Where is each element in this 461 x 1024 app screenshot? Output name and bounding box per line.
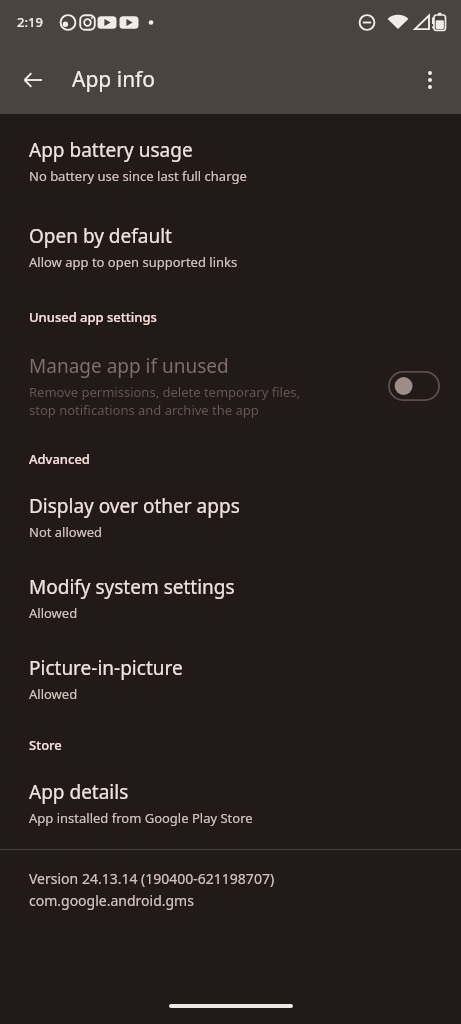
staticText: com.google.android.gms [29,891,194,910]
button[interactable]: Picture-in-picture [0,655,461,703]
staticText: App installed from Google Play Store [29,809,253,827]
staticText: App details [29,779,129,805]
staticText: App battery usage [29,137,193,163]
staticText: Advanced [29,450,90,468]
staticText: Allowed [29,685,78,703]
staticText: Manage app if unused [29,353,229,379]
button[interactable]: Display over other apps [0,493,461,541]
staticText: Not allowed [29,523,102,541]
staticText: Store [29,736,62,754]
staticText: stop notifications and archive the app [29,401,259,419]
staticText: 2:19 [17,13,43,31]
staticText: Allow app to open supported links [29,253,238,271]
staticText: Picture-in-picture [29,655,183,681]
staticText: App info [72,65,156,94]
button[interactable]: Modify system settings [0,574,461,622]
staticText: Unused app settings [29,308,157,326]
staticText: No battery use since last full charge [29,167,247,185]
button[interactable]: App battery usage [0,137,461,185]
staticText: Allowed [29,604,78,622]
staticText: Version 24.13.14 (190400-621198707) [29,869,275,888]
staticText: Display over other apps [29,493,240,519]
button[interactable]: Manage app if unused [0,353,461,419]
staticText: Modify system settings [29,574,235,600]
staticText: Remove permissions, delete temporary fil… [29,383,300,401]
button[interactable]: More options [406,56,454,104]
button[interactable]: Back [9,56,57,104]
staticText: Open by default [29,223,172,249]
button[interactable]: Manage app if unused toggle [388,371,440,401]
button[interactable]: Open by default [0,223,461,271]
button[interactable]: App details [0,779,461,827]
